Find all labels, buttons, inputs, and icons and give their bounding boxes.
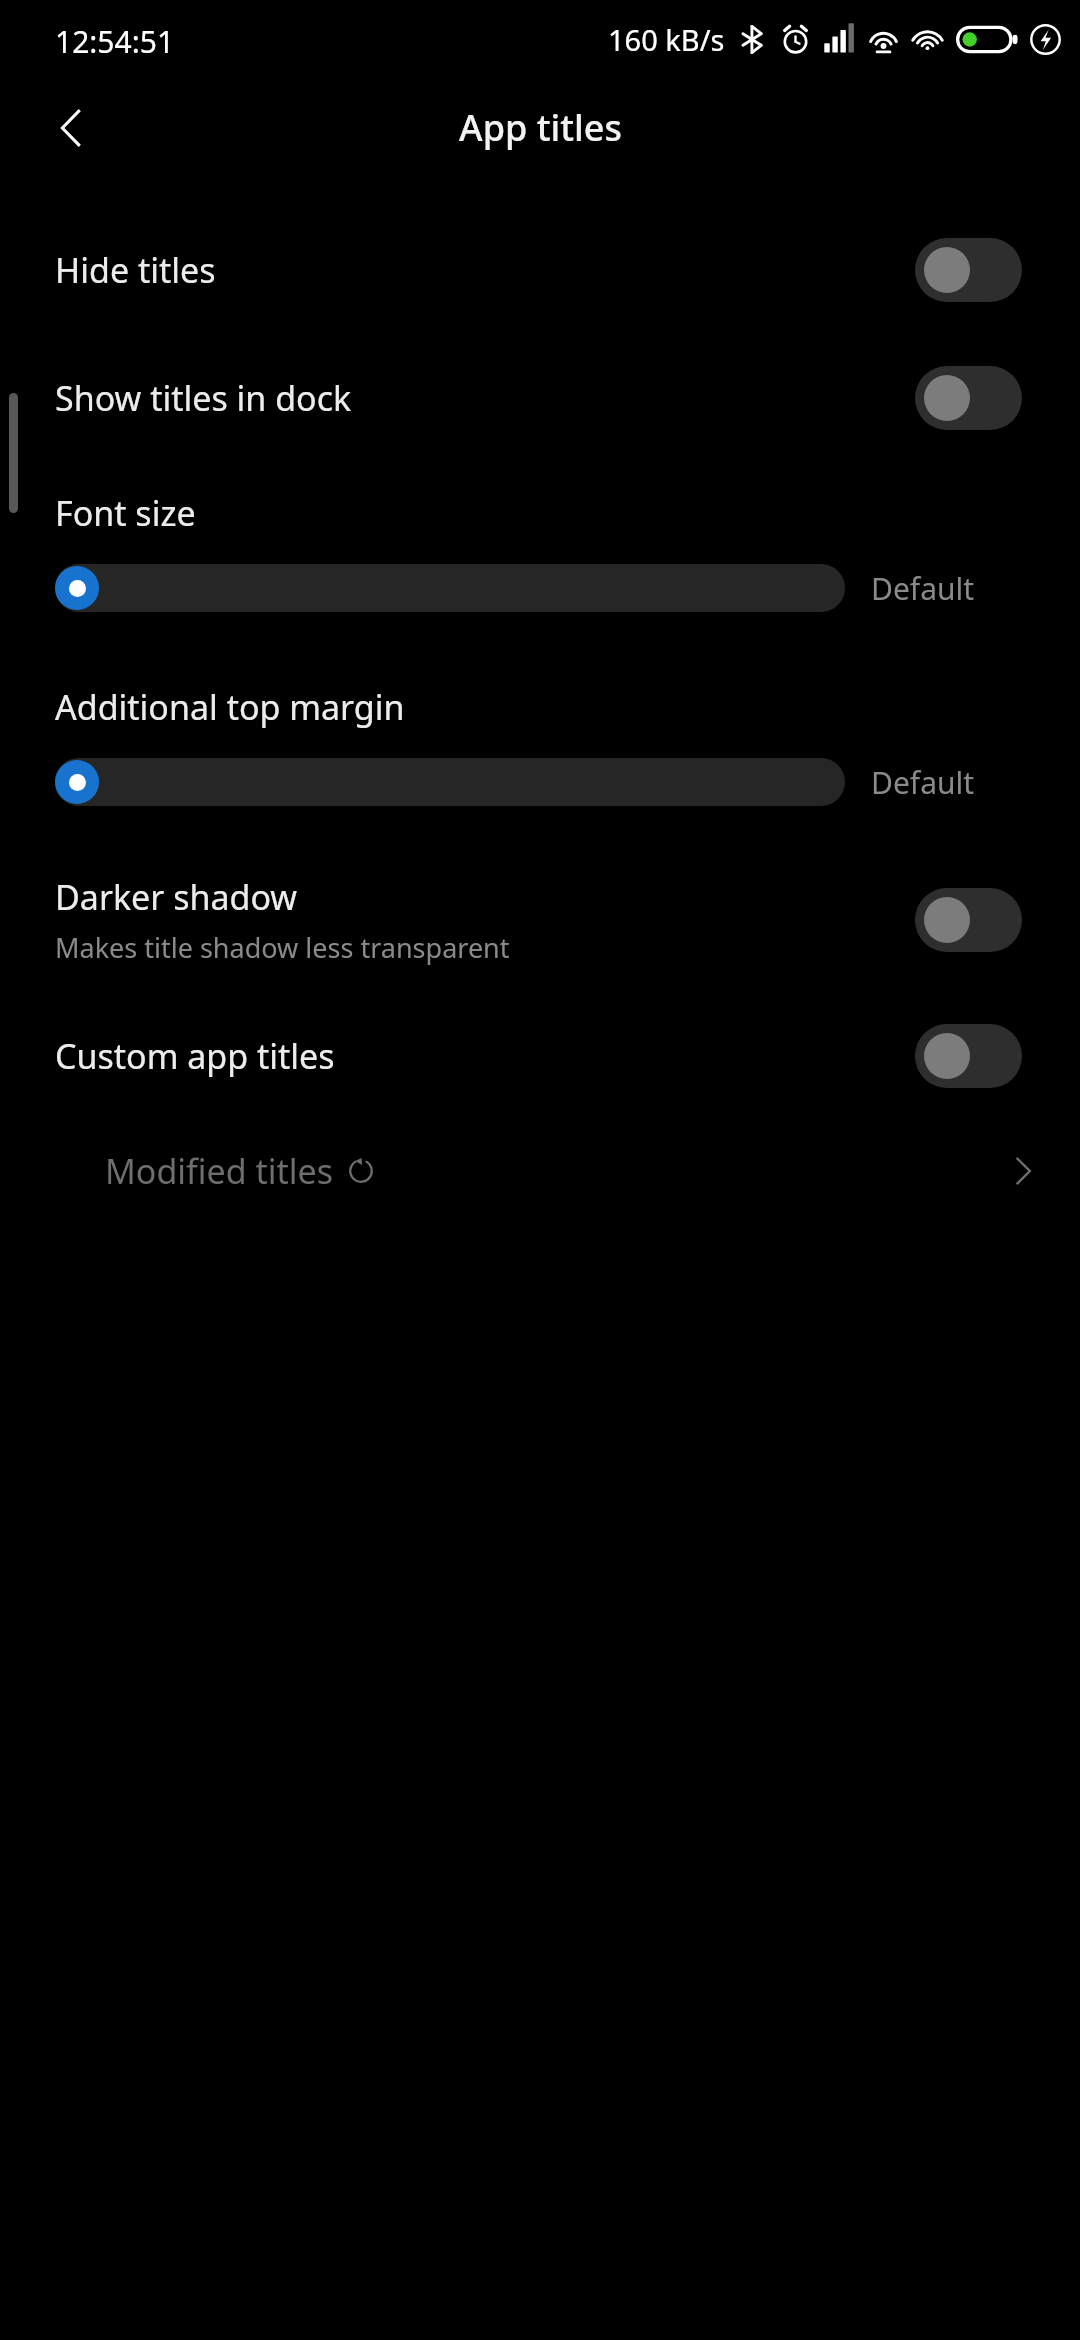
staticText: Modified titles — [105, 1148, 334, 1194]
staticText: Default — [871, 762, 975, 803]
button[interactable]: Hide titles — [915, 238, 1022, 302]
staticText: Default — [871, 568, 975, 609]
staticText: Makes title shadow less transparent — [55, 929, 510, 966]
staticText: Darker shadow — [55, 874, 298, 920]
button[interactable]: Hide titles — [0, 180, 1080, 302]
button[interactable]: Show titles in dock — [915, 366, 1022, 430]
staticText: App titles — [459, 103, 622, 152]
button[interactable]: Modified titles — [0, 1088, 1080, 1194]
button[interactable]: Back — [24, 80, 120, 176]
staticText: Additional top margin — [55, 684, 405, 730]
staticText: Show titles in dock — [55, 375, 352, 421]
staticText: Font size — [55, 490, 196, 536]
button[interactable]: Darker shadow — [0, 808, 1080, 966]
button[interactable]: Additional top margin — [55, 756, 845, 808]
staticText: 160 kB/s — [608, 20, 725, 59]
staticText: Hide titles — [55, 247, 216, 293]
button[interactable]: Font size — [55, 562, 845, 614]
button[interactable]: Darker shadow — [915, 888, 1022, 952]
button[interactable]: Custom app titles — [0, 966, 1080, 1088]
button[interactable]: Custom app titles — [915, 1024, 1022, 1088]
staticText: 12:54:51 — [55, 21, 175, 62]
staticText: Custom app titles — [55, 1033, 335, 1079]
button[interactable]: Show titles in dock — [0, 302, 1080, 430]
